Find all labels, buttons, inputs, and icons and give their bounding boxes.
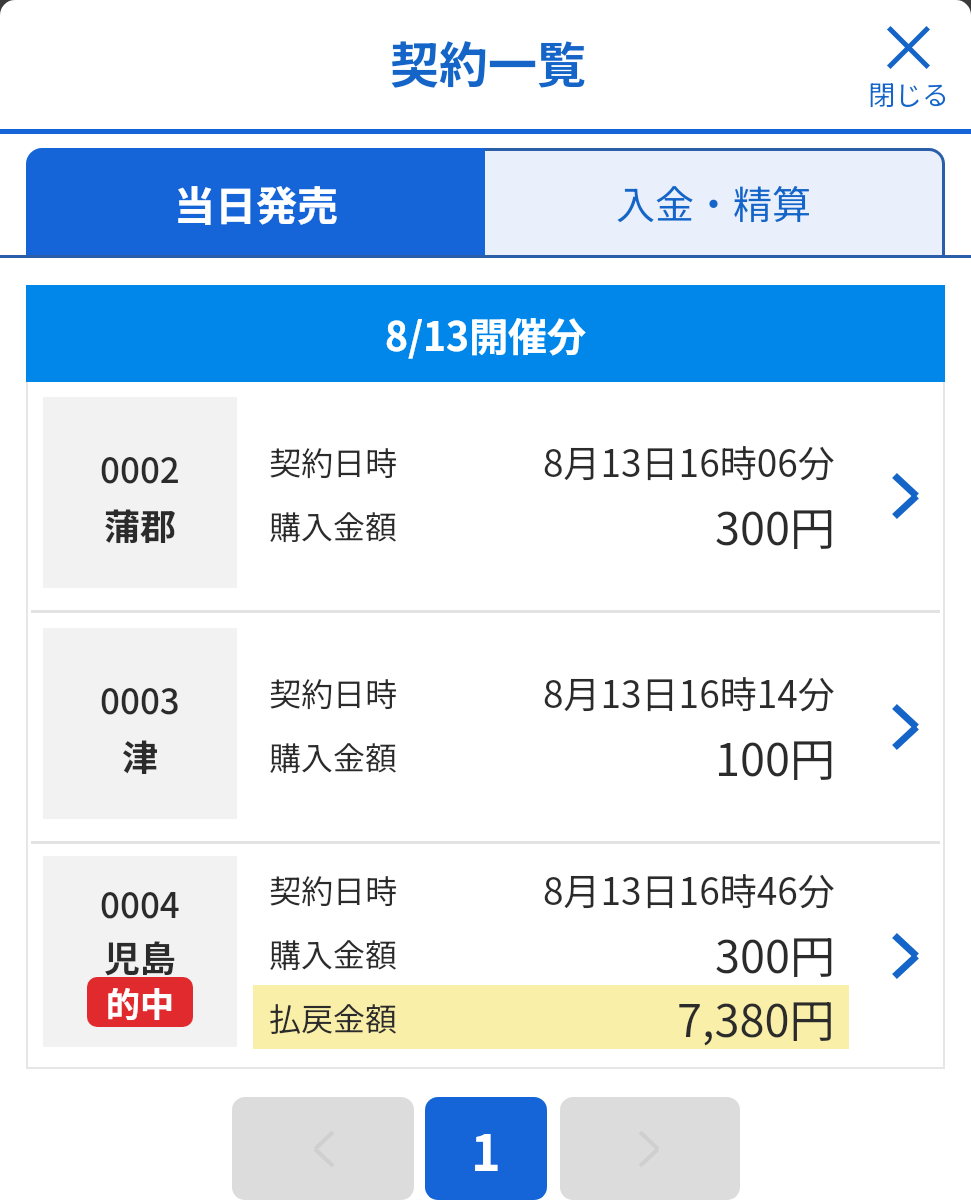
staticText: 8月13日16時14分 [543, 665, 835, 719]
staticText: 7,380円 [677, 985, 835, 1049]
staticText: 300円 [715, 921, 835, 985]
staticText: 当日発売 [174, 173, 338, 232]
button[interactable]: 前のページ [232, 1097, 414, 1200]
staticText: 8月13日16時06分 [543, 434, 835, 488]
staticText: 的中 [106, 978, 174, 1027]
staticText: 8月13日16時46分 [543, 862, 835, 916]
staticText: 購入金額 [269, 930, 398, 976]
staticText: 購入金額 [269, 733, 398, 779]
staticText: 100円 [715, 724, 835, 788]
staticText: 0002 [100, 442, 180, 493]
button[interactable]: 次のページ [560, 1097, 740, 1200]
staticText: 津 [122, 729, 159, 781]
staticText: 閉じる [868, 74, 949, 113]
button[interactable]: 0002 [43, 382, 943, 610]
staticText: 購入金額 [269, 502, 398, 548]
staticText: 8/13開催分 [385, 306, 587, 362]
button[interactable]: 0003 [43, 613, 943, 841]
staticText: 児島 [104, 930, 177, 982]
staticText: 300円 [715, 493, 835, 557]
button[interactable]: 閉じる [866, 26, 950, 113]
button[interactable]: 0004 [43, 844, 943, 1067]
button[interactable]: 入金・精算 [485, 151, 942, 255]
button[interactable]: 当日発売 [26, 148, 485, 255]
staticText: 1 [471, 1113, 501, 1185]
staticText: 0003 [100, 673, 180, 724]
button[interactable]: 1 [425, 1097, 547, 1200]
staticText: 契約一覧 [390, 26, 587, 97]
staticText: 契約日時 [269, 438, 398, 484]
staticText: 0004 [100, 877, 180, 928]
staticText: 契約日時 [269, 866, 398, 912]
staticText: 払戻金額 [269, 994, 398, 1040]
staticText: 契約日時 [269, 669, 398, 715]
staticText: 入金・精算 [616, 174, 812, 230]
staticText: 蒲郡 [104, 498, 177, 550]
